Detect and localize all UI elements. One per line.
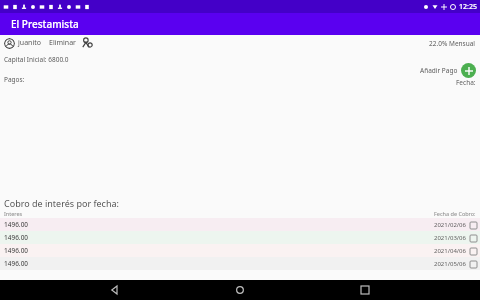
staticText: 2021/05/06	[434, 260, 466, 268]
staticText: 1496.00	[4, 259, 29, 268]
staticText: El Prestamista	[11, 17, 79, 31]
button[interactable]: Eliminar	[49, 38, 76, 48]
button[interactable]: Marcar cobro 2021/05/06	[469, 260, 477, 268]
staticText: Capital Inicial: 6800.0	[4, 55, 69, 64]
staticText: 2021/04/06	[434, 247, 466, 255]
button[interactable]: Marcar cobro 2021/03/06	[469, 234, 477, 242]
staticText: 1496.00	[4, 233, 29, 242]
staticText: Fecha:	[456, 78, 476, 87]
button[interactable]: 1496.00	[0, 218, 480, 231]
staticText: 22.0% Mensual	[429, 39, 476, 48]
button[interactable]: Marcar cobro 2021/04/06	[469, 247, 477, 255]
staticText: 12:25	[459, 2, 477, 12]
button[interactable]: Avatar	[4, 38, 15, 49]
button[interactable]: Recents	[355, 280, 375, 300]
staticText: 1496.00	[4, 246, 29, 255]
button[interactable]: Añadir Pago	[461, 63, 476, 78]
staticText: Cobro de interés por fecha:	[4, 197, 119, 209]
button[interactable]: 1496.00	[0, 257, 480, 270]
button[interactable]: 1496.00	[0, 244, 480, 257]
button[interactable]: Home	[230, 280, 250, 300]
staticText: Añadir Pago	[420, 66, 458, 75]
staticText: juanito	[18, 38, 41, 48]
button[interactable]: 1496.00	[0, 231, 480, 244]
staticText: Fecha de Cobro:	[434, 210, 476, 217]
staticText: 2021/03/06	[434, 234, 466, 242]
staticText: 2021/02/06	[434, 221, 466, 229]
staticText: 1496.00	[4, 220, 29, 229]
staticText: Interes	[4, 210, 23, 217]
button[interactable]: Back	[105, 280, 125, 300]
staticText: Pagos:	[4, 75, 25, 84]
button[interactable]: Marcar cobro 2021/02/06	[469, 221, 477, 229]
button[interactable]: Gestionar cliente	[80, 36, 94, 50]
